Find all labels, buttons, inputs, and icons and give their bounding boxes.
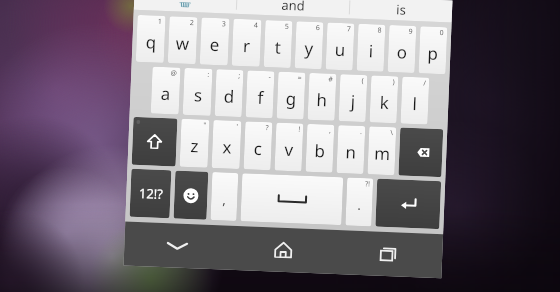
staticText: .	[360, 127, 362, 137]
staticText: l	[412, 92, 418, 115]
staticText: b	[314, 139, 326, 162]
button[interactable]: Hide keyboard	[123, 221, 231, 270]
button[interactable]: 6	[295, 21, 323, 69]
staticText: =	[297, 73, 302, 83]
staticText: "	[203, 121, 206, 131]
staticText: i	[368, 39, 374, 62]
button[interactable]: =	[277, 72, 305, 120]
button[interactable]: 5	[264, 20, 292, 68]
staticText: r	[242, 34, 251, 57]
staticText: p	[427, 41, 439, 65]
staticText: 9	[408, 27, 413, 37]
button[interactable]: ?	[243, 121, 272, 170]
button[interactable]: )	[369, 75, 398, 123]
button[interactable]: -	[246, 70, 274, 118]
button[interactable]: ;	[215, 69, 243, 117]
button[interactable]: @	[151, 66, 181, 115]
staticText: 8	[377, 25, 382, 36]
staticText: y	[304, 37, 314, 60]
staticText: 0	[439, 28, 444, 38]
staticText: ;	[238, 71, 240, 81]
button[interactable]: 7	[326, 22, 354, 70]
staticText: m	[374, 141, 391, 165]
staticText: 3	[221, 19, 226, 29]
button[interactable]: /	[400, 76, 429, 124]
staticText: n	[345, 140, 357, 164]
button[interactable]: ,	[210, 172, 238, 221]
button[interactable]: 8	[357, 24, 385, 72]
staticText: ?	[265, 123, 269, 133]
button[interactable]: 0	[418, 26, 447, 74]
staticText: 2	[189, 18, 194, 28]
staticText: is	[396, 0, 406, 19]
button[interactable]: Delete	[398, 127, 443, 177]
staticText: g	[285, 87, 297, 110]
button[interactable]: Home	[229, 226, 337, 274]
staticText: a	[160, 82, 171, 105]
button[interactable]: \	[367, 126, 396, 175]
button[interactable]: ?!	[345, 177, 373, 226]
button[interactable]: :	[183, 68, 212, 116]
staticText: and	[281, 0, 305, 14]
staticText: :	[207, 70, 209, 80]
staticText: .	[357, 196, 361, 214]
staticText: w	[175, 31, 190, 55]
button[interactable]: Emoji	[173, 170, 208, 220]
staticText: !	[298, 124, 300, 134]
staticText: k	[379, 91, 390, 114]
button[interactable]: #	[307, 73, 336, 121]
button[interactable]: Recents	[335, 230, 443, 278]
button[interactable]: "	[180, 119, 209, 168]
button[interactable]: 2	[168, 16, 198, 64]
button[interactable]: and	[237, 0, 349, 18]
button[interactable]: Space	[240, 173, 343, 225]
button[interactable]	[134, 0, 237, 14]
button[interactable]: 4	[232, 19, 262, 67]
staticText: u	[334, 38, 346, 61]
staticText: f	[257, 86, 264, 109]
button[interactable]: !	[274, 122, 303, 171]
staticText: '	[236, 122, 238, 132]
staticText: 12!?	[138, 184, 164, 203]
staticText: z	[190, 134, 199, 157]
button[interactable]: ,	[305, 124, 334, 173]
button[interactable]: '	[211, 120, 241, 169]
staticText: e	[209, 33, 220, 56]
staticText: -	[268, 72, 271, 82]
button[interactable]: Symbols	[129, 169, 171, 218]
staticText: ,	[329, 126, 331, 136]
staticText: j	[350, 89, 356, 113]
staticText: 1	[157, 17, 163, 27]
staticText: ?!	[365, 179, 370, 189]
button[interactable]: is	[350, 0, 452, 22]
staticText: q	[145, 30, 157, 54]
staticText: 4	[253, 20, 258, 31]
staticText: (	[361, 76, 364, 86]
button[interactable]: 9	[387, 25, 416, 73]
button[interactable]: 1	[136, 15, 166, 63]
button[interactable]: Shift	[132, 117, 177, 166]
staticText: o	[396, 40, 408, 64]
staticText: /	[423, 78, 426, 88]
staticText: h	[316, 88, 328, 111]
staticText: 6	[315, 23, 320, 33]
staticText: x	[222, 135, 232, 159]
staticText: @	[170, 68, 177, 78]
staticText: t	[274, 35, 282, 59]
staticText: \	[390, 128, 393, 138]
staticText: c	[253, 137, 263, 160]
staticText: s	[193, 83, 203, 106]
staticText: 7	[346, 24, 351, 34]
staticText: 5	[284, 22, 289, 32]
button[interactable]: .	[336, 125, 365, 174]
button[interactable]: Enter	[375, 179, 441, 229]
staticText: )	[392, 77, 395, 87]
staticText: #	[328, 75, 333, 85]
staticText: d	[223, 84, 235, 108]
staticText: ,	[222, 190, 227, 208]
button[interactable]: (	[338, 74, 367, 122]
staticText: v	[284, 138, 294, 161]
button[interactable]: 3	[200, 17, 230, 65]
